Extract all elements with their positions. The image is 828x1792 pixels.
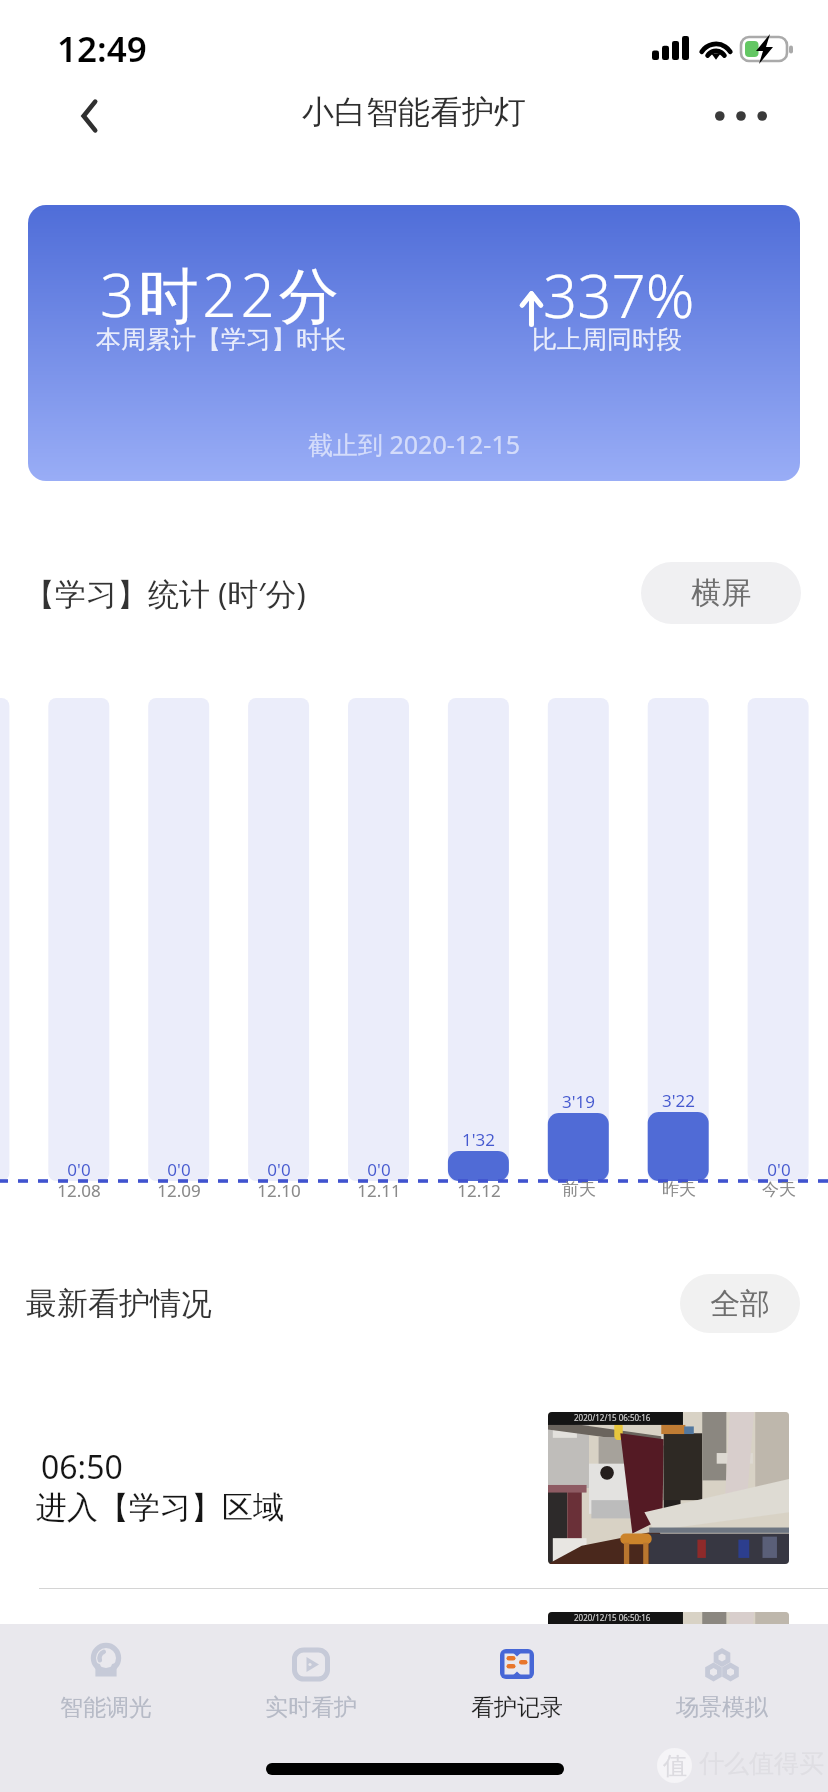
staticText: 2020/12/15 06:50:16 (574, 1412, 651, 1423)
staticText: 0'0 (267, 1158, 291, 1181)
staticText: 12.11 (357, 1179, 401, 1202)
staticText: 昨天 (662, 1179, 696, 1200)
staticText: 全部 (710, 1285, 770, 1323)
staticText: 0'0 (367, 1158, 391, 1181)
staticText: 3时22分 (100, 253, 343, 335)
staticText: 看护记录 (471, 1693, 563, 1722)
staticText: 截止到 2020-12-15 (308, 427, 521, 461)
staticText: 横屏 (691, 574, 751, 612)
staticText: 337% (543, 254, 695, 336)
staticText: 什么值得买 (699, 1748, 824, 1779)
button[interactable]: 横屏 (641, 562, 801, 624)
staticText: 智能调光 (60, 1693, 152, 1722)
button[interactable]: More options (702, 86, 780, 146)
staticText: 12.08 (57, 1179, 101, 1202)
staticText: 1'32 (462, 1128, 495, 1151)
button[interactable]: 智能调光 (6, 1624, 206, 1734)
staticText: 前天 (562, 1179, 596, 1200)
staticText: 实时看护 (265, 1693, 357, 1722)
staticText: 本周累计【学习】时长 (96, 324, 346, 355)
staticText: 比上周同时段 (532, 324, 682, 355)
staticText: 进入【学习】区域 (36, 1488, 284, 1527)
staticText: 小白智能看护灯 (302, 92, 526, 132)
staticText: 今天 (762, 1179, 796, 1200)
button[interactable]: 场景模拟 (622, 1624, 822, 1734)
staticText: 0'0 (767, 1158, 791, 1181)
staticText: 12:49 (57, 25, 147, 73)
staticText: 12.09 (157, 1179, 201, 1202)
button[interactable]: 看护记录 (417, 1624, 617, 1734)
button[interactable]: 全部 (680, 1274, 800, 1333)
staticText: 3'19 (562, 1090, 595, 1113)
button[interactable]: 06:50 (0, 1390, 828, 1590)
staticText: 12.10 (257, 1179, 301, 1202)
staticText: 0'0 (67, 1158, 91, 1181)
staticText: 3'22 (662, 1089, 695, 1112)
button[interactable]: 实时看护 (211, 1624, 411, 1734)
staticText: 0'0 (167, 1158, 191, 1181)
staticText: 【学习】统计 (时′分) (24, 572, 306, 614)
button[interactable]: Back (64, 86, 124, 146)
staticText: 12.12 (457, 1179, 501, 1202)
staticText: 最新看护情况 (26, 1284, 212, 1323)
staticText: 值 (663, 1751, 687, 1781)
button[interactable]: 3时22分 (28, 205, 800, 481)
staticText: 2020/12/15 06:50:16 (574, 1612, 651, 1623)
staticText: 06:50 (41, 1445, 123, 1489)
staticText: 场景模拟 (676, 1693, 768, 1722)
